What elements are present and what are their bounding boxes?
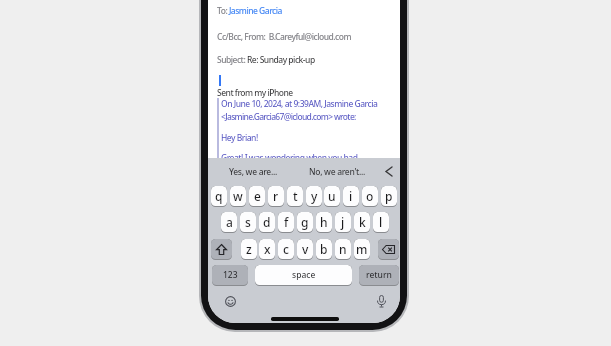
button[interactable]: i <box>343 186 359 207</box>
staticText: p <box>385 188 393 204</box>
staticText: 123 <box>223 269 238 281</box>
button[interactable]: y <box>306 186 322 207</box>
button[interactable]: space <box>255 265 352 286</box>
button[interactable]: c <box>278 239 294 260</box>
staticText: f <box>284 214 289 230</box>
button[interactable]: r <box>268 186 284 207</box>
staticText: space <box>292 269 316 281</box>
button[interactable]: k <box>354 212 370 233</box>
button[interactable]: u <box>324 186 340 207</box>
staticText: i <box>349 188 353 204</box>
staticText: x <box>264 241 271 257</box>
staticText: t <box>293 188 298 204</box>
button[interactable]: No, we aren't... <box>309 166 366 178</box>
button[interactable]: l <box>373 212 389 233</box>
button[interactable]: Cc/Bcc, From: B.Careyful@icloud.com <box>217 31 351 43</box>
staticText: a <box>226 214 233 230</box>
button[interactable]: s <box>240 212 256 233</box>
button[interactable]: j <box>335 212 351 233</box>
button[interactable]: return <box>359 265 399 286</box>
staticText: Hey Brian! <box>221 132 258 144</box>
button[interactable]: h <box>316 212 332 233</box>
staticText: o <box>366 188 374 204</box>
button[interactable] <box>378 239 399 260</box>
button[interactable] <box>377 295 386 308</box>
button[interactable]: m <box>354 239 370 260</box>
staticText: On June 10, 2024, at 9:39AM, Jasmine Gar… <box>221 98 378 110</box>
staticText: h <box>320 214 328 230</box>
button[interactable]: w <box>230 186 246 207</box>
button[interactable]: z <box>241 239 257 260</box>
button[interactable]: o <box>362 186 378 207</box>
button[interactable]: 123 <box>212 265 248 286</box>
staticText: Great! I was wondering when you had <box>221 152 358 158</box>
button[interactable]: To: Jasmine Garcia <box>217 5 282 17</box>
button[interactable]: v <box>297 239 313 260</box>
button[interactable]: x <box>259 239 275 260</box>
staticText: l <box>379 214 383 230</box>
staticText: z <box>246 241 252 257</box>
button[interactable]: p <box>381 186 397 207</box>
staticText: g <box>301 214 309 230</box>
staticText: c <box>283 241 289 257</box>
staticText: s <box>245 214 251 230</box>
button[interactable]: q <box>211 186 227 207</box>
staticText: q <box>215 188 223 204</box>
button[interactable]: f <box>278 212 294 233</box>
staticText: Sent from my iPhone <box>217 87 293 99</box>
button[interactable]: t <box>287 186 303 207</box>
button[interactable]: g <box>297 212 313 233</box>
button[interactable]: Yes, we are... <box>229 166 277 178</box>
button[interactable] <box>211 239 232 260</box>
staticText: k <box>359 214 366 230</box>
button[interactable]: a <box>221 212 237 233</box>
staticText: d <box>263 214 271 230</box>
staticText: <Jasmine.Garcia67@icloud.com> wrote: <box>221 111 356 123</box>
staticText: w <box>233 188 243 204</box>
staticText: return <box>366 269 392 281</box>
staticText: j <box>341 214 345 230</box>
staticText: v <box>302 241 309 257</box>
button[interactable]: n <box>335 239 351 260</box>
button[interactable]: d <box>259 212 275 233</box>
staticText: r <box>273 188 279 204</box>
staticText: b <box>320 241 328 257</box>
staticText: u <box>328 188 336 204</box>
staticText: m <box>356 241 368 257</box>
button[interactable] <box>225 296 236 307</box>
staticText: n <box>339 241 347 257</box>
button[interactable]: e <box>249 186 265 207</box>
button[interactable] <box>386 167 392 176</box>
button[interactable]: Subject: Re: Sunday pick-up <box>217 54 315 66</box>
button[interactable]: b <box>316 239 332 260</box>
staticText: y <box>311 188 318 204</box>
staticText: e <box>254 188 261 204</box>
